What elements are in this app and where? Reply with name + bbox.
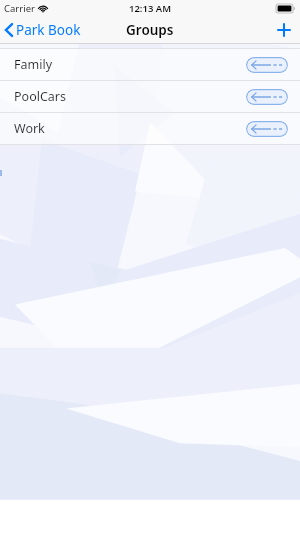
staticText: 12:13 AM [129,2,172,15]
staticText: Work [14,120,45,137]
button[interactable]: Share group [246,89,288,105]
button[interactable]: Family [0,49,300,80]
button[interactable]: Add group [268,16,300,44]
staticText: PoolCars [14,88,66,105]
button[interactable]: Park Book [0,16,87,44]
staticText: Groups [126,21,174,39]
staticText: Family [14,56,53,73]
staticText: Park Book [16,21,81,39]
button[interactable]: Share group [246,57,288,73]
button[interactable]: Work [0,113,300,144]
staticText: Carrier [4,2,35,15]
button[interactable]: PoolCars [0,81,300,112]
button[interactable]: Share group [246,121,288,137]
